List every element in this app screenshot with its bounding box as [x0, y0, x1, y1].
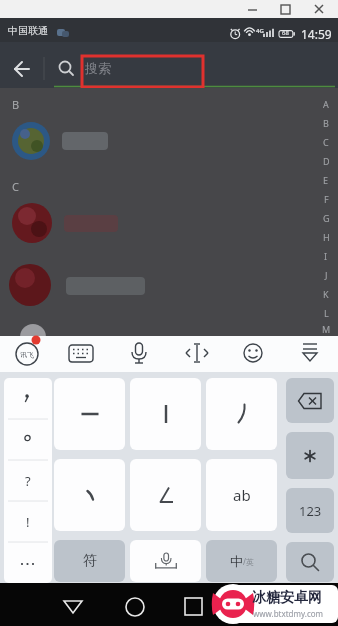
staticText: M: [322, 323, 331, 335]
button[interactable]: [0, 336, 57, 372]
staticText: 中国联通: [8, 24, 48, 37]
button[interactable]: [4, 542, 52, 583]
staticText: E: [323, 174, 329, 186]
staticText: J: [325, 269, 328, 281]
button[interactable]: [286, 542, 334, 582]
button[interactable]: [57, 336, 114, 372]
button[interactable]: [0, 196, 316, 250]
button[interactable]: 中: [206, 540, 277, 582]
staticText: www.btxtdmy.com: [253, 608, 324, 619]
staticText: 中: [230, 553, 243, 569]
staticText: I: [324, 250, 328, 262]
button[interactable]: B: [0, 88, 338, 336]
button[interactable]: [4, 378, 52, 419]
button[interactable]: [282, 336, 338, 372]
button[interactable]: [130, 378, 201, 450]
button[interactable]: [0, 583, 112, 626]
button[interactable]: 符: [54, 540, 125, 582]
button[interactable]: [114, 336, 170, 372]
button[interactable]: [206, 378, 277, 450]
button[interactable]: 搜索: [85, 60, 111, 76]
staticText: ?: [25, 472, 31, 490]
button[interactable]: [4, 419, 52, 460]
button[interactable]: [112, 583, 225, 626]
button[interactable]: 123: [286, 488, 334, 533]
button[interactable]: [54, 459, 125, 531]
staticText: 123: [299, 502, 322, 520]
button[interactable]: [130, 459, 201, 531]
button[interactable]: [4, 460, 52, 501]
staticText: C: [323, 136, 329, 148]
button[interactable]: [226, 336, 282, 372]
button[interactable]: ab: [206, 459, 277, 531]
button[interactable]: [0, 42, 44, 88]
staticText: L: [324, 307, 329, 319]
staticText: !: [26, 513, 30, 531]
button[interactable]: [0, 258, 316, 312]
staticText: 14:59: [301, 26, 332, 42]
button[interactable]: 讯飞: [14, 341, 40, 367]
staticText: F: [324, 193, 329, 205]
button[interactable]: [170, 336, 226, 372]
staticText: B: [12, 97, 20, 112]
staticText: H: [323, 231, 330, 243]
staticText: K: [323, 288, 329, 300]
button[interactable]: [286, 378, 334, 423]
staticText: 符: [83, 552, 97, 570]
staticText: A: [323, 98, 329, 110]
button[interactable]: [130, 540, 201, 582]
button[interactable]: [225, 583, 338, 626]
staticText: 68: [282, 29, 289, 37]
staticText: ab: [233, 485, 251, 505]
button[interactable]: [0, 114, 316, 168]
staticText: /英: [243, 556, 254, 567]
button[interactable]: [286, 432, 334, 479]
staticText: 4G: [256, 27, 264, 35]
staticText: D: [323, 155, 330, 167]
staticText: G: [323, 212, 330, 224]
staticText: B: [323, 117, 329, 129]
staticText: C: [12, 179, 19, 194]
staticText: 冰糖安卓网: [252, 589, 322, 607]
button[interactable]: [4, 501, 52, 542]
staticText: 讯飞: [20, 350, 34, 359]
button[interactable]: [54, 378, 125, 450]
